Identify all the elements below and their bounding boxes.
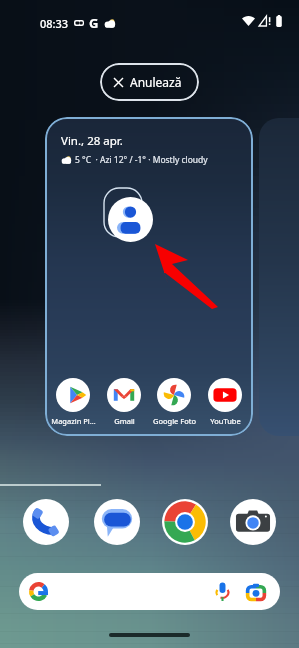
button[interactable]: Vin., 28 apr. — [45, 117, 253, 436]
button[interactable] — [19, 573, 280, 610]
button[interactable]: Chrome — [162, 499, 208, 545]
button[interactable]: Camera — [230, 499, 276, 545]
staticText: Magazin Pl… — [51, 416, 96, 426]
staticText: Anulează — [130, 74, 182, 90]
button[interactable]: Anulează — [100, 63, 199, 101]
button[interactable]: Magazin Pl… — [50, 378, 96, 426]
button[interactable]: Google Foto — [151, 378, 197, 426]
staticText: YouTube — [210, 416, 241, 426]
button[interactable]: Messages — [94, 499, 140, 545]
button[interactable]: YouTube — [202, 378, 248, 426]
staticText: Google Foto — [153, 416, 196, 426]
button[interactable]: Phone — [23, 499, 69, 545]
staticText: Gmail — [114, 416, 135, 426]
staticText: 5 °C · Azi 12° / -1° · Mostly cloudy — [75, 154, 208, 166]
button[interactable]: Contacts widget — [108, 197, 153, 242]
staticText: Vin., 28 apr. — [61, 133, 123, 149]
staticText: G — [89, 14, 99, 32]
button[interactable]: Gmail — [101, 378, 147, 426]
staticText: 08:33 — [40, 16, 69, 31]
